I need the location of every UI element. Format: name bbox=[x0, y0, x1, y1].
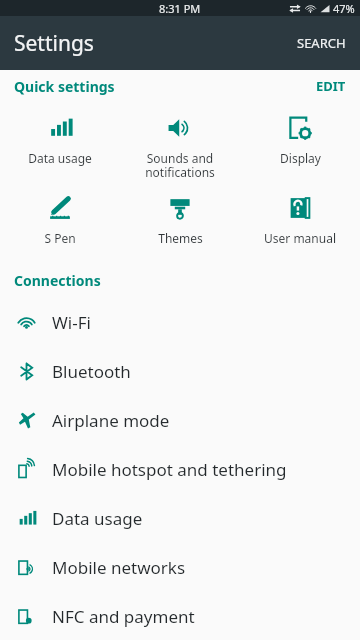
button[interactable]: SEARCH bbox=[283, 24, 360, 62]
staticText: User manual bbox=[264, 230, 336, 246]
staticText: Airplane mode bbox=[52, 409, 170, 432]
button[interactable]: Themes bbox=[120, 182, 240, 262]
staticText: Connections bbox=[14, 271, 101, 290]
button[interactable]: Airplane mode bbox=[0, 396, 360, 445]
staticText: Settings bbox=[14, 29, 94, 58]
button[interactable]: Wi-Fi bbox=[0, 298, 360, 347]
button[interactable]: Bluetooth bbox=[0, 347, 360, 396]
staticText: 47% bbox=[333, 1, 355, 16]
staticText: Wi-Fi bbox=[52, 311, 91, 334]
button[interactable]: S Pen bbox=[0, 182, 120, 262]
button[interactable]: Data usage bbox=[0, 102, 120, 182]
button[interactable]: Mobile hotspot and tethering bbox=[0, 445, 360, 494]
button[interactable]: Data usage bbox=[0, 494, 360, 543]
button[interactable]: Mobile networks bbox=[0, 543, 360, 592]
staticText: Display bbox=[280, 150, 321, 166]
staticText: Data usage bbox=[52, 507, 143, 530]
staticText: Sounds and notifications bbox=[145, 150, 215, 181]
staticText: Bluetooth bbox=[52, 360, 131, 383]
button[interactable]: Sounds and notifications bbox=[120, 102, 240, 182]
staticText: EDIT bbox=[316, 77, 346, 95]
staticText: SEARCH bbox=[297, 34, 346, 52]
button[interactable]: NFC and payment bbox=[0, 592, 360, 640]
staticText: Mobile hotspot and tethering bbox=[52, 458, 287, 481]
staticText: S Pen bbox=[44, 230, 76, 246]
button[interactable]: User manual bbox=[240, 182, 360, 262]
staticText: Quick settings bbox=[14, 77, 115, 96]
staticText: 8:31 PM bbox=[159, 1, 201, 16]
staticText: Themes bbox=[158, 230, 203, 246]
staticText: Mobile networks bbox=[52, 556, 186, 579]
staticText: NFC and payment bbox=[52, 605, 195, 628]
button[interactable]: EDIT bbox=[302, 71, 360, 101]
staticText: Data usage bbox=[28, 150, 92, 166]
button[interactable]: Display bbox=[240, 102, 360, 182]
